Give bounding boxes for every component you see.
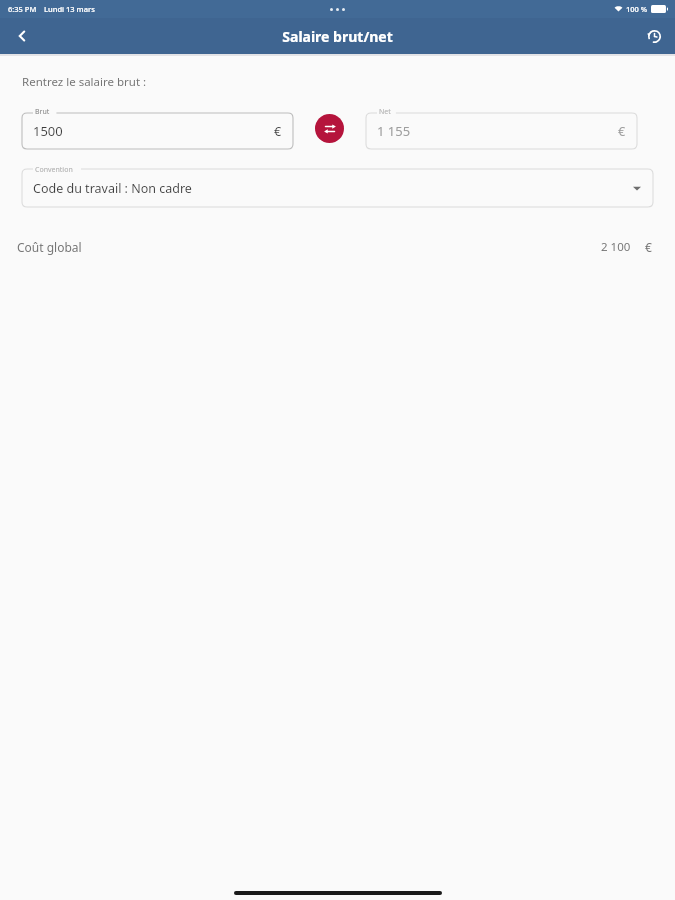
button[interactable]: Brut bbox=[22, 107, 293, 149]
staticText: 1 155 bbox=[377, 122, 411, 140]
staticText: 6:35 PM bbox=[8, 4, 37, 14]
button[interactable]: Convention bbox=[22, 169, 653, 207]
staticText: Convention bbox=[35, 165, 73, 175]
button[interactable]: Inverser brut et net bbox=[315, 114, 344, 143]
button[interactable]: History bbox=[633, 18, 675, 54]
staticText: € bbox=[618, 123, 626, 140]
staticText: Coût global bbox=[17, 239, 82, 255]
staticText: Rentrez le salaire brut : bbox=[22, 74, 147, 90]
staticText: Net bbox=[379, 107, 391, 117]
button[interactable]: Net bbox=[366, 107, 637, 149]
staticText: € bbox=[645, 239, 652, 255]
staticText: Code du travail : Non cadre bbox=[33, 180, 192, 197]
staticText: Brut bbox=[35, 107, 50, 117]
staticText: € bbox=[274, 123, 282, 140]
staticText: 2 100 bbox=[601, 239, 631, 255]
staticText: 100 % bbox=[626, 4, 648, 14]
button[interactable]: Back bbox=[0, 18, 44, 54]
staticText: Lundi 13 mars bbox=[44, 4, 95, 14]
staticText: 1500 bbox=[33, 122, 63, 140]
staticText: Salaire brut/net bbox=[282, 27, 393, 46]
